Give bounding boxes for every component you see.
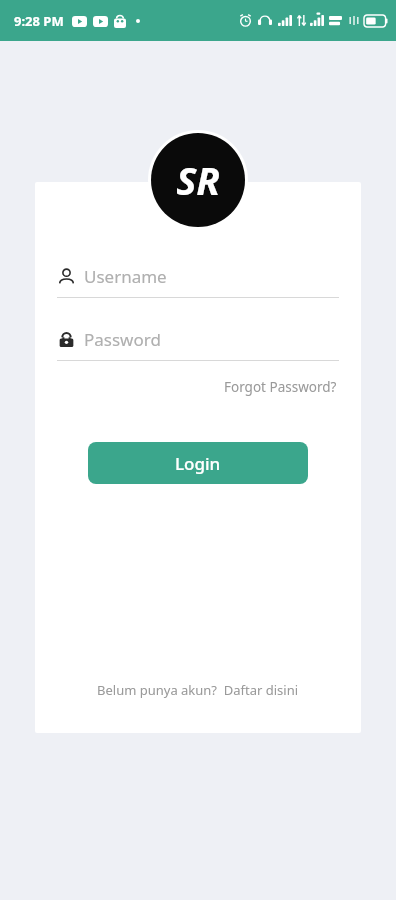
button[interactable]: Username (57, 261, 339, 291)
staticText: Forgot Password? (224, 378, 337, 396)
staticText: Belum punya akun? Daftar disini (97, 681, 299, 699)
staticText: 9:28 PM (14, 12, 64, 30)
staticText: SR (176, 154, 220, 206)
button[interactable]: Belum punya akun? Daftar disini (93, 677, 303, 703)
staticText: Login (175, 452, 221, 475)
button[interactable]: Forgot Password? (222, 375, 339, 399)
other: Username (57, 267, 76, 286)
staticText: Username (84, 265, 167, 288)
staticText: Password (84, 328, 161, 351)
button[interactable]: Login (88, 442, 308, 484)
button[interactable]: Password (57, 324, 339, 354)
other: Password (57, 330, 76, 349)
